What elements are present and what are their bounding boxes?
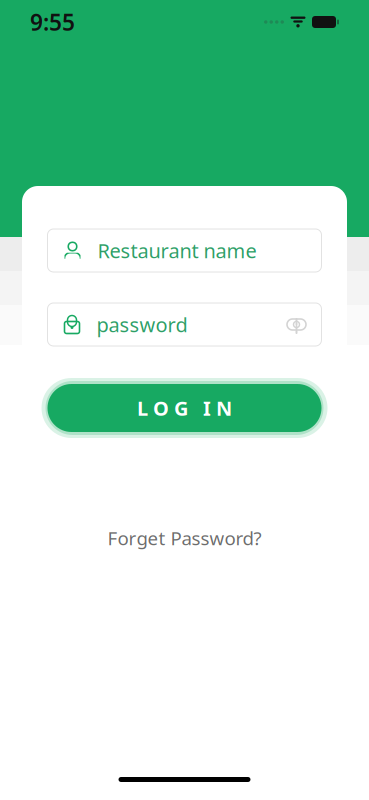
staticText: password — [96, 311, 187, 338]
staticText: 9:55 — [30, 7, 75, 37]
staticText: Forget Password? — [107, 526, 261, 550]
staticText: L O G I N — [137, 395, 232, 421]
button[interactable]: L O G I N — [39, 377, 329, 439]
staticText: Restaurant name — [97, 237, 256, 264]
button[interactable]: Restaurant name — [47, 229, 321, 272]
button[interactable]: Forget Password? — [84, 525, 284, 551]
button[interactable]: password — [47, 303, 321, 346]
